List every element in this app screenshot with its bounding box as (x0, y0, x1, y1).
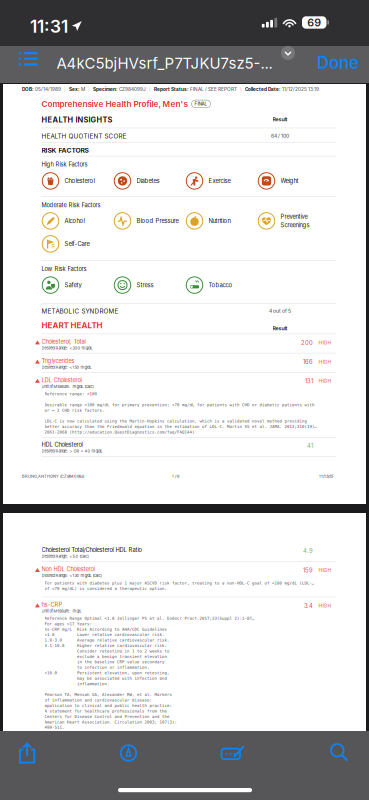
staticText: Cholesterol Total/Cholesterol HDL Ratio (41, 546, 141, 553)
staticText: 4 out of 5 (269, 308, 291, 314)
staticText: BRUNO,ANTHONY (CZ984099J) (22, 474, 84, 479)
staticText: may be associated with infection and (44, 676, 166, 681)
staticText: 200 (301, 339, 313, 346)
staticText: Consider retesting in 1 to 2 weeks to (44, 649, 169, 653)
staticText: 69 (307, 16, 321, 29)
staticText: Low Risk Factors (41, 265, 86, 272)
staticText: Self-Care (64, 240, 89, 247)
staticText: American Heart Association. Circulation … (44, 720, 176, 724)
staticText: 131 (305, 378, 313, 385)
staticText: Desired Range: <130 mg/dL (calc) (41, 573, 101, 578)
staticText: Reference range: <100 (44, 392, 96, 396)
staticText: better accuracy than the Friedewald equa… (44, 424, 316, 429)
staticText: | (61, 86, 69, 92)
staticText: FINAL / SEE REPORT (190, 86, 237, 92)
staticText: 3.1-10.0 Higher relative cardiovascular … (44, 643, 166, 648)
staticText: <1.0 Lower relative cardiovascular risk. (44, 632, 164, 637)
staticText: Cholesterol, Total (41, 338, 85, 345)
staticText: or = 2 CHD risk factors. (44, 408, 104, 413)
staticText: Desired Range: <200 mg/dL (41, 346, 92, 350)
staticText: Triglycerides (41, 357, 74, 364)
staticText: HIGH (318, 340, 331, 346)
staticText: Screenings (280, 222, 309, 229)
staticText: Desirable range <100 mg/dL for primary p… (44, 402, 314, 407)
staticText: Blood Pressure (136, 217, 178, 224)
button[interactable]: Page thumbnails (10, 41, 46, 76)
staticText: hs-CRP (41, 601, 62, 608)
staticText: 11:31 (30, 16, 68, 37)
button[interactable]: Share (0, 731, 54, 775)
staticText: Desired Range: <150 mg/dL (41, 365, 91, 370)
button[interactable]: Search (313, 731, 367, 775)
staticText: For patients with diabetes plus 1 major … (44, 581, 313, 585)
staticText: METABOLIC SYNDROME (41, 307, 118, 315)
staticText: 4.9 (303, 547, 313, 554)
staticText: HIGH (318, 603, 331, 609)
staticText: Diabetes (136, 177, 159, 184)
staticText: in the baseline CRP value secondary (44, 660, 164, 664)
staticText: Safety (64, 282, 81, 289)
staticText: Non HDL Cholesterol (41, 566, 94, 573)
staticText: application to clinical and public healt… (44, 703, 171, 708)
button[interactable]: Document options (276, 41, 300, 65)
staticText: 41 (307, 442, 313, 449)
staticText: Stress (136, 282, 153, 289)
staticText: LDL Cholesterol (41, 377, 81, 383)
button[interactable]: Done (309, 44, 367, 81)
staticText: Tobacco (208, 282, 232, 289)
staticText: Weight (280, 177, 298, 184)
staticText: Nutrition (208, 217, 230, 224)
staticText: | (85, 86, 93, 92)
staticText: FINAL (194, 101, 207, 107)
staticText: 166 (303, 358, 313, 365)
staticText: Report Status: (154, 86, 190, 92)
staticText: Desired Range: <5.0 (calc) (41, 554, 88, 559)
button[interactable]: Fill and Sign (206, 731, 260, 775)
staticText: DOB: (22, 86, 35, 92)
staticText: 159 (303, 567, 313, 574)
staticText: of <70 mg/dL) is considered a therapeuti… (44, 586, 166, 591)
staticText: 499-511. (44, 725, 64, 730)
staticText: Cholesterol (64, 177, 94, 184)
staticText: 2061-2068 (http://education.QuestDiagnos… (44, 430, 194, 434)
staticText: Exercise (208, 177, 230, 184)
staticText: Reference Range Optimal <1.0 Jellinger P… (44, 616, 253, 621)
staticText: exclude a benign transient elevation (44, 654, 166, 659)
staticText: 64 / 100 (271, 133, 289, 139)
staticText: of inflammation and cardiovascular disea… (44, 698, 151, 702)
staticText: Done (317, 52, 359, 73)
staticText: Preventive (280, 213, 307, 220)
staticText: 1.0-3.0 Average relative cardiovascular … (44, 638, 169, 642)
staticText: 11/12/2025 13:19 (282, 86, 319, 92)
staticText: RISK FACTORS (41, 146, 88, 154)
staticText: HEART HEALTH (41, 320, 102, 330)
staticText: Specimen: (93, 86, 119, 92)
staticText: hs-CRP mg/L Risk According to AHA/CDC Gu… (44, 627, 166, 632)
staticText: For ages >17 Years: (44, 621, 91, 626)
staticText: Unit of Measure: mg/L (41, 609, 81, 613)
staticText: HIGH (318, 378, 331, 384)
staticText: Centers for Disease Control and Preventi… (44, 714, 169, 719)
staticText: Collected Date: (245, 86, 282, 92)
staticText: Pearson TA, Mensah GA, Alexander RW, et … (44, 692, 171, 697)
staticText: 11/13/25 (319, 474, 333, 479)
staticText: to infection or inflammation. (44, 665, 149, 670)
staticText: Moderate Risk Factors (41, 202, 100, 208)
button[interactable]: Markup (101, 731, 155, 775)
staticText: A4kC5bjHVsrf_P7TJKU7sz5-... (56, 54, 272, 72)
staticText: CZ984099J (119, 86, 146, 92)
staticText: Alcohol (64, 217, 84, 224)
staticText: Sex: (69, 86, 81, 92)
staticText: >10.0 Persistent elevation, upon retesti… (44, 671, 169, 675)
staticText: Result (272, 116, 287, 123)
staticText: Desired Range: > OR = 40 mg/dL (41, 449, 102, 453)
staticText: 3.4 (304, 602, 313, 609)
staticText: LDL-C is now calculated using the Martin… (44, 419, 306, 424)
staticText: HEALTH QUOTIENT SCORE (41, 132, 126, 140)
staticText: | (146, 86, 154, 92)
staticText: HDL Cholesterol (41, 441, 82, 448)
staticText: Result (272, 325, 287, 331)
